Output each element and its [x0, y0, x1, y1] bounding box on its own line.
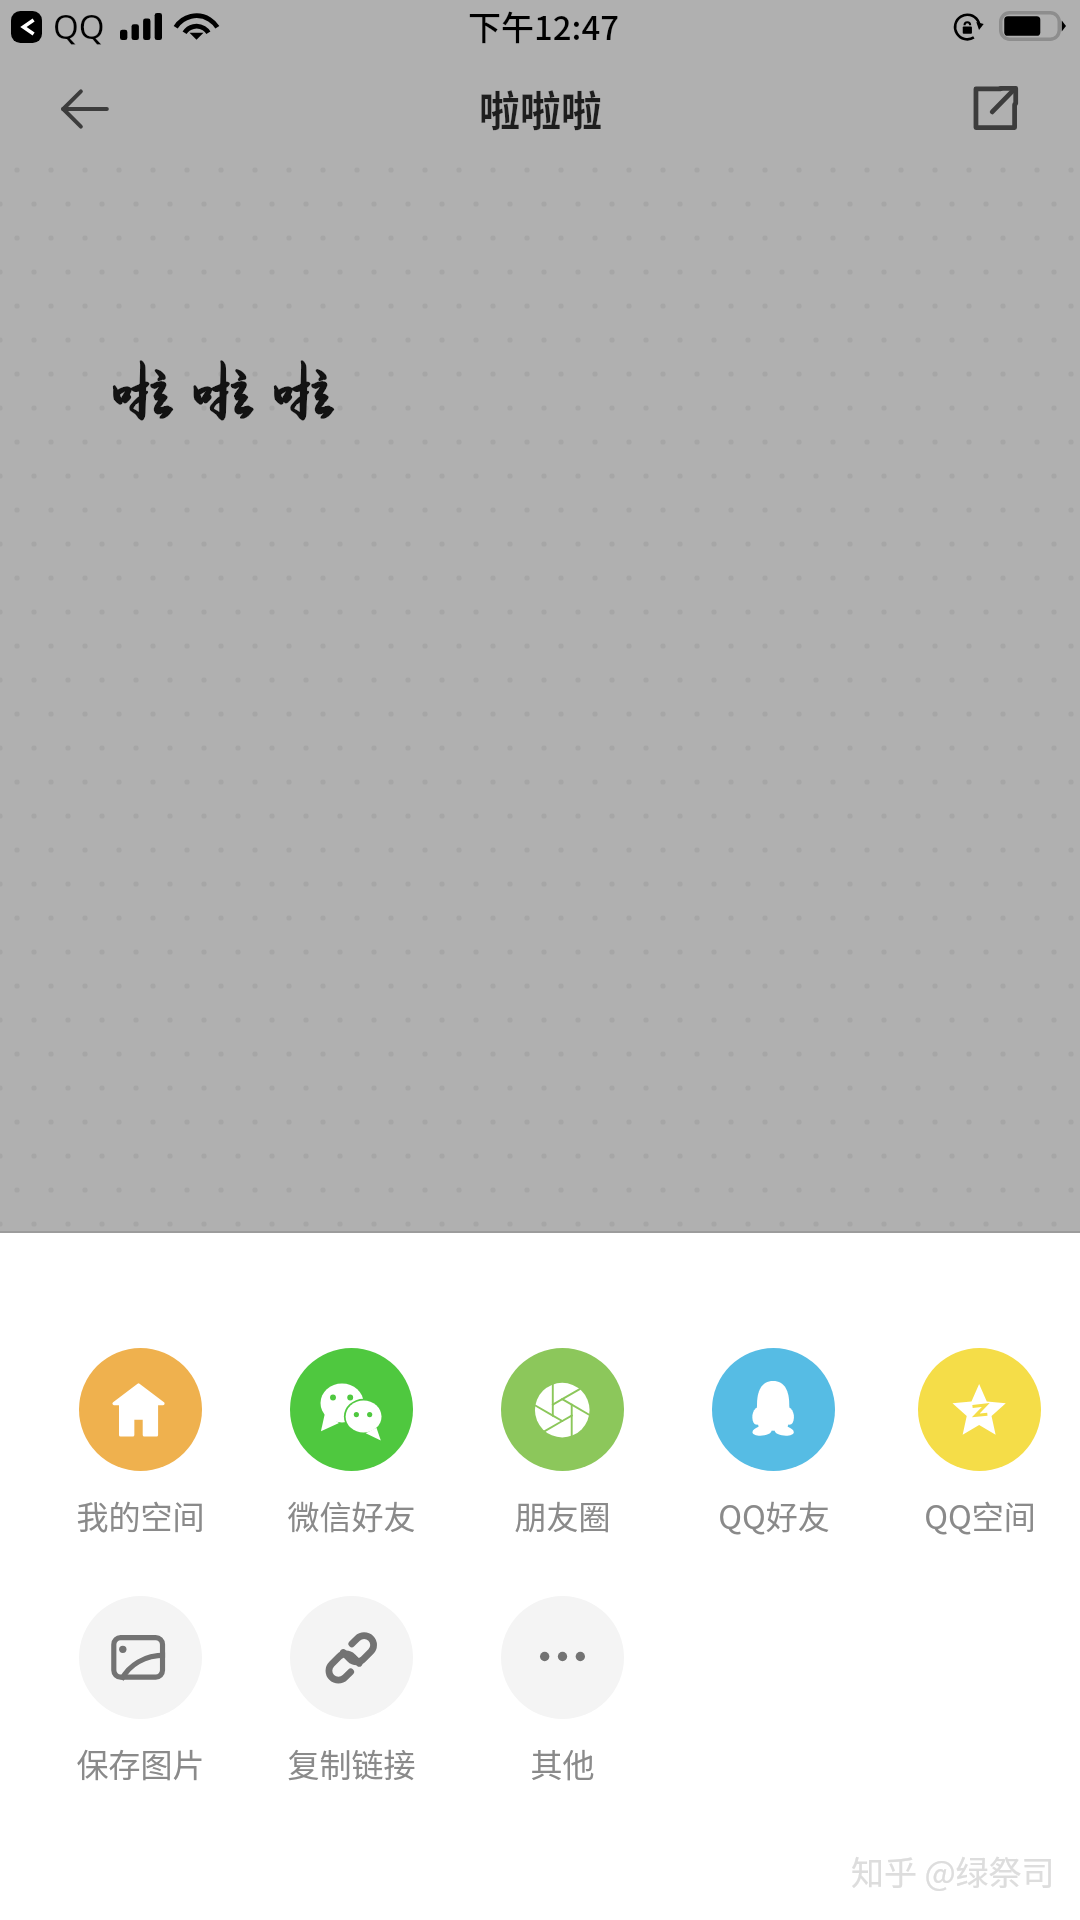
- staticText: 复制链接: [287, 1740, 416, 1786]
- staticText: QQ好友: [718, 1492, 830, 1538]
- staticText: 我的空间: [76, 1492, 205, 1538]
- staticText: QQ: [53, 4, 105, 49]
- button[interactable]: 复制链接: [246, 1596, 457, 1786]
- staticText: 朋友圈: [514, 1492, 611, 1538]
- staticText: 知乎 @绿祭司: [851, 1847, 1055, 1895]
- button[interactable]: QQ空间: [879, 1348, 1080, 1538]
- button[interactable]: 其他: [457, 1596, 668, 1786]
- staticText: 下午12:47: [468, 2, 620, 50]
- staticText: 啦啦啦: [479, 78, 602, 137]
- staticText: 微信好友: [287, 1492, 416, 1538]
- button[interactable]: 朋友圈: [457, 1348, 668, 1538]
- button[interactable]: 我的空间: [35, 1348, 246, 1538]
- staticText: 啦啦啦: [110, 356, 352, 420]
- staticText: 保存图片: [76, 1740, 205, 1786]
- staticText: QQ空间: [924, 1492, 1036, 1538]
- button[interactable]: Open in browser: [956, 69, 1034, 147]
- button[interactable]: 微信好友: [246, 1348, 457, 1538]
- button[interactable]: QQ好友: [668, 1348, 879, 1538]
- staticText: 啦啦啦: [110, 356, 352, 420]
- staticText: 其他: [530, 1740, 595, 1786]
- button[interactable]: 保存图片: [35, 1596, 246, 1786]
- button[interactable]: Back: [44, 69, 124, 149]
